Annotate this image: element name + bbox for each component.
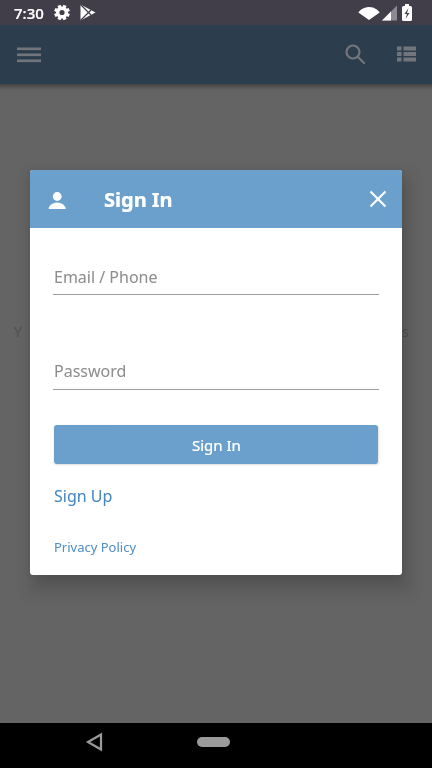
staticText: Privacy Policy	[54, 538, 137, 556]
staticText: Y	[14, 322, 22, 340]
staticText: Password	[54, 360, 127, 382]
staticText: Sign In	[104, 186, 173, 213]
staticText: Sign In	[192, 435, 241, 455]
staticText: 7:30	[14, 3, 44, 23]
staticText: Sign Up	[54, 485, 113, 507]
staticText: Email / Phone	[54, 266, 158, 288]
staticText: s	[402, 322, 409, 340]
